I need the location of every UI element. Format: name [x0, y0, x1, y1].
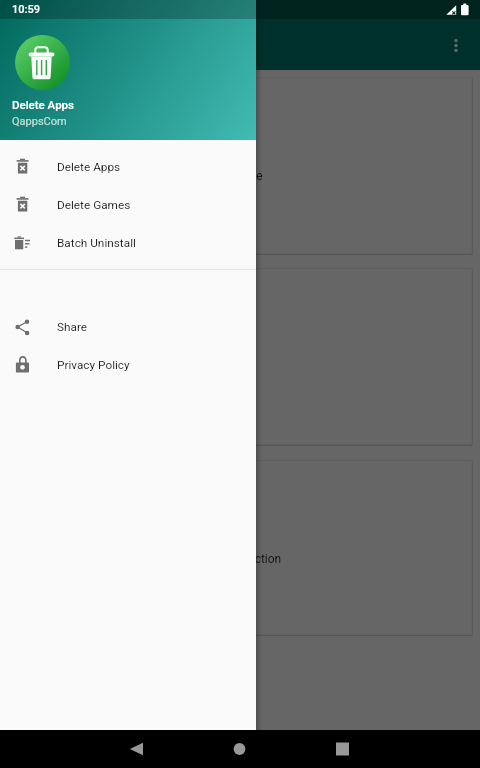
button[interactable]: More options	[442, 31, 470, 59]
button[interactable]: Privacy Policy	[0, 346, 256, 384]
button[interactable]: Share	[0, 308, 256, 346]
button[interactable]: Apps	[7, 268, 473, 446]
button[interactable]: Batch selection	[7, 460, 473, 636]
staticText: Batch Uninstall	[57, 236, 136, 250]
staticText: Delete Games	[57, 198, 131, 212]
button[interactable]: App size	[7, 77, 473, 255]
button[interactable]	[0, 0, 480, 768]
button[interactable]: Recent apps	[325, 735, 361, 763]
staticText: Privacy Policy	[57, 358, 130, 372]
staticText: 10:59	[12, 3, 40, 16]
staticText: Batch selection	[199, 552, 282, 566]
staticText: Delete Apps	[12, 98, 74, 111]
button[interactable]: App icon	[15, 35, 70, 90]
staticText: App size	[217, 169, 263, 183]
button[interactable]: Delete Apps	[0, 148, 256, 186]
button[interactable]: Back	[118, 735, 154, 763]
staticText: Share	[57, 320, 88, 334]
button[interactable]: Delete Games	[0, 186, 256, 224]
button[interactable]: Home	[222, 735, 258, 763]
staticText: QappsCom	[12, 115, 67, 128]
staticText: Delete Apps	[57, 160, 121, 174]
button[interactable]: Batch Uninstall	[0, 224, 256, 262]
